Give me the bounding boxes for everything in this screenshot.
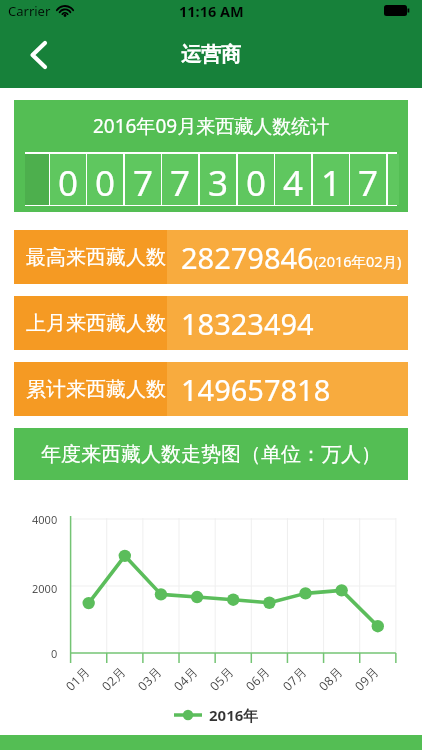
staticText: 7 xyxy=(358,159,379,205)
staticText: 02月 xyxy=(98,663,129,694)
staticText: 01月 xyxy=(62,663,93,694)
button[interactable]: 最高来西藏人数 xyxy=(14,230,408,284)
staticText: 11:16 AM xyxy=(179,1,244,21)
staticText: 09月 xyxy=(351,663,382,694)
staticText: 4000 xyxy=(32,512,58,526)
staticText: 最高来西藏人数 xyxy=(26,245,166,270)
staticText: 4 xyxy=(283,159,304,205)
staticText: Carrier xyxy=(8,2,51,20)
staticText: 18323494 xyxy=(181,304,314,343)
staticText: (2016年02月) xyxy=(314,251,402,271)
staticText: 7 xyxy=(133,159,154,205)
staticText: 149657818 xyxy=(181,370,331,409)
button[interactable]: 累计来西藏人数 xyxy=(14,362,408,416)
staticText: 0 xyxy=(246,159,267,205)
staticText: 0 xyxy=(95,159,116,205)
staticText: 28279846 xyxy=(181,238,314,277)
staticText: 累计来西藏人数 xyxy=(26,377,166,402)
staticText: 年度来西藏人数走势图（单位：万人） xyxy=(41,442,381,467)
staticText: 05月 xyxy=(206,663,237,694)
staticText: 2016年09月来西藏人数统计 xyxy=(93,113,330,139)
staticText: 7 xyxy=(170,159,191,205)
staticText: 1 xyxy=(321,159,342,205)
staticText: 06月 xyxy=(242,663,273,694)
button[interactable] xyxy=(18,33,58,77)
staticText: 2016年 xyxy=(209,705,259,725)
staticText: 0 xyxy=(58,159,79,205)
staticText: 2000 xyxy=(32,581,58,595)
staticText: 3 xyxy=(208,159,229,205)
staticText: 运营商 xyxy=(181,42,241,67)
staticText: 04月 xyxy=(170,663,201,694)
staticText: 上月来西藏人数 xyxy=(26,311,166,336)
button[interactable]: 上月来西藏人数 xyxy=(14,296,408,350)
staticText: 03月 xyxy=(134,663,165,694)
staticText: 08月 xyxy=(315,663,346,694)
staticText: 0 xyxy=(51,646,58,660)
staticText: 07月 xyxy=(279,663,310,694)
